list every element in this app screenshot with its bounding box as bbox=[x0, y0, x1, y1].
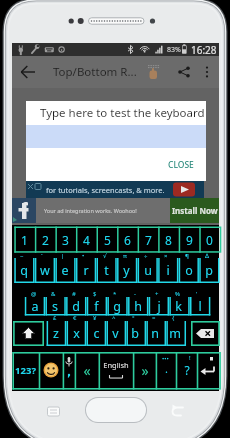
button[interactable]: e bbox=[55, 258, 74, 283]
staticText: o bbox=[185, 262, 193, 279]
staticText: k bbox=[175, 298, 182, 315]
staticText: 0 bbox=[206, 232, 213, 248]
staticText: i bbox=[166, 262, 170, 279]
button[interactable]: 9 bbox=[179, 227, 200, 253]
staticText: √ bbox=[103, 252, 107, 259]
button[interactable]: 0 bbox=[199, 227, 219, 253]
button[interactable]: u bbox=[138, 258, 157, 283]
staticText: ? bbox=[184, 362, 190, 378]
button[interactable]: 1 bbox=[14, 227, 35, 253]
staticText: y bbox=[123, 262, 130, 279]
button[interactable]: » bbox=[133, 352, 156, 388]
staticText: j bbox=[157, 298, 161, 315]
staticText: $ bbox=[93, 290, 97, 298]
button[interactable]: z bbox=[47, 321, 65, 346]
staticText: Install Now bbox=[172, 205, 218, 216]
staticText: 5 bbox=[104, 232, 111, 248]
button[interactable]: Share bbox=[176, 64, 192, 80]
button[interactable]: j bbox=[149, 297, 168, 316]
button[interactable]: 8 bbox=[158, 227, 179, 253]
staticText: ¶ bbox=[185, 252, 189, 260]
button[interactable]: Back bbox=[18, 61, 40, 83]
staticText: w bbox=[40, 262, 50, 279]
button[interactable]: Enter bbox=[197, 352, 219, 388]
staticText: d bbox=[72, 298, 80, 315]
staticText: Top/Bottom R... bbox=[53, 64, 137, 80]
staticText: . bbox=[165, 361, 168, 376]
staticText: | bbox=[61, 252, 65, 260]
button[interactable]: 5 bbox=[97, 227, 118, 253]
staticText: - bbox=[134, 290, 136, 298]
button[interactable]: i bbox=[158, 258, 177, 283]
staticText: 3 bbox=[62, 232, 69, 248]
button[interactable]: 4 bbox=[76, 227, 97, 253]
button[interactable]: English bbox=[99, 352, 133, 378]
staticText: a bbox=[31, 298, 39, 315]
staticText: ` bbox=[41, 252, 43, 260]
button[interactable]: b bbox=[126, 321, 144, 346]
staticText: # bbox=[72, 290, 76, 298]
button[interactable]: f bbox=[87, 297, 106, 316]
staticText: 2 bbox=[42, 232, 49, 248]
button[interactable]: t bbox=[97, 258, 116, 283]
button[interactable]: 3 bbox=[55, 227, 76, 253]
button[interactable]: y bbox=[117, 258, 136, 283]
staticText: = bbox=[152, 314, 156, 322]
button[interactable]: CLOSE bbox=[164, 156, 198, 174]
staticText: & bbox=[51, 290, 56, 298]
button[interactable]: Emoji bbox=[39, 352, 63, 388]
button[interactable]: q bbox=[14, 258, 33, 283]
button[interactable]: 7 bbox=[138, 227, 159, 253]
staticText: u bbox=[144, 262, 152, 279]
staticText: € bbox=[73, 314, 77, 322]
staticText: n bbox=[151, 325, 159, 342]
staticText: 8 bbox=[165, 232, 172, 248]
staticText: h bbox=[134, 298, 142, 315]
staticText: { bbox=[172, 314, 175, 322]
button[interactable]: Voice input bbox=[63, 352, 75, 388]
button[interactable]: d bbox=[66, 297, 85, 316]
button[interactable]: « bbox=[75, 352, 99, 388]
staticText: ° bbox=[132, 314, 135, 322]
button[interactable]: n bbox=[146, 321, 164, 346]
button[interactable]: More options bbox=[200, 65, 214, 79]
staticText: ¥ bbox=[93, 314, 97, 322]
staticText: » bbox=[141, 361, 149, 380]
button[interactable]: Install Now bbox=[170, 198, 219, 223]
staticText: ' bbox=[196, 290, 198, 298]
staticText: % bbox=[175, 290, 180, 298]
button[interactable]: g bbox=[107, 297, 126, 316]
button[interactable]: h bbox=[128, 297, 147, 316]
button[interactable]: m bbox=[166, 321, 184, 346]
button[interactable]: p bbox=[199, 258, 218, 283]
staticText: q bbox=[20, 262, 28, 279]
button[interactable]: x bbox=[67, 321, 85, 346]
staticText: ^ bbox=[112, 314, 116, 322]
staticText: c bbox=[93, 325, 100, 342]
button[interactable]: Shift bbox=[13, 321, 44, 346]
staticText: ~ bbox=[20, 252, 24, 260]
button[interactable]: 123? bbox=[12, 352, 38, 388]
button[interactable]: a bbox=[25, 297, 44, 316]
button[interactable]: r bbox=[76, 258, 95, 283]
staticText: for tutorials, screencasts, & more. bbox=[46, 185, 165, 195]
staticText: Type here to test the keyboard bbox=[40, 105, 205, 121]
button[interactable]: v bbox=[106, 321, 124, 346]
button[interactable]: o bbox=[179, 258, 198, 283]
button[interactable]: . bbox=[156, 352, 176, 384]
button[interactable]: w bbox=[35, 258, 54, 283]
button[interactable]: s bbox=[45, 297, 64, 316]
staticText: Your ad integration works. Woohoo! bbox=[44, 207, 137, 214]
button[interactable]: 6 bbox=[117, 227, 138, 253]
button[interactable]: k bbox=[169, 297, 188, 316]
staticText: v bbox=[112, 325, 119, 342]
staticText: p bbox=[205, 262, 213, 279]
button[interactable]: c bbox=[87, 321, 105, 346]
staticText: π bbox=[123, 252, 127, 260]
button[interactable]: 2 bbox=[35, 227, 56, 253]
button[interactable]: l bbox=[190, 297, 209, 316]
button[interactable]: ? bbox=[176, 352, 197, 388]
staticText: l bbox=[198, 298, 202, 315]
staticText: g bbox=[113, 298, 121, 315]
button[interactable]: Backspace bbox=[191, 321, 219, 346]
